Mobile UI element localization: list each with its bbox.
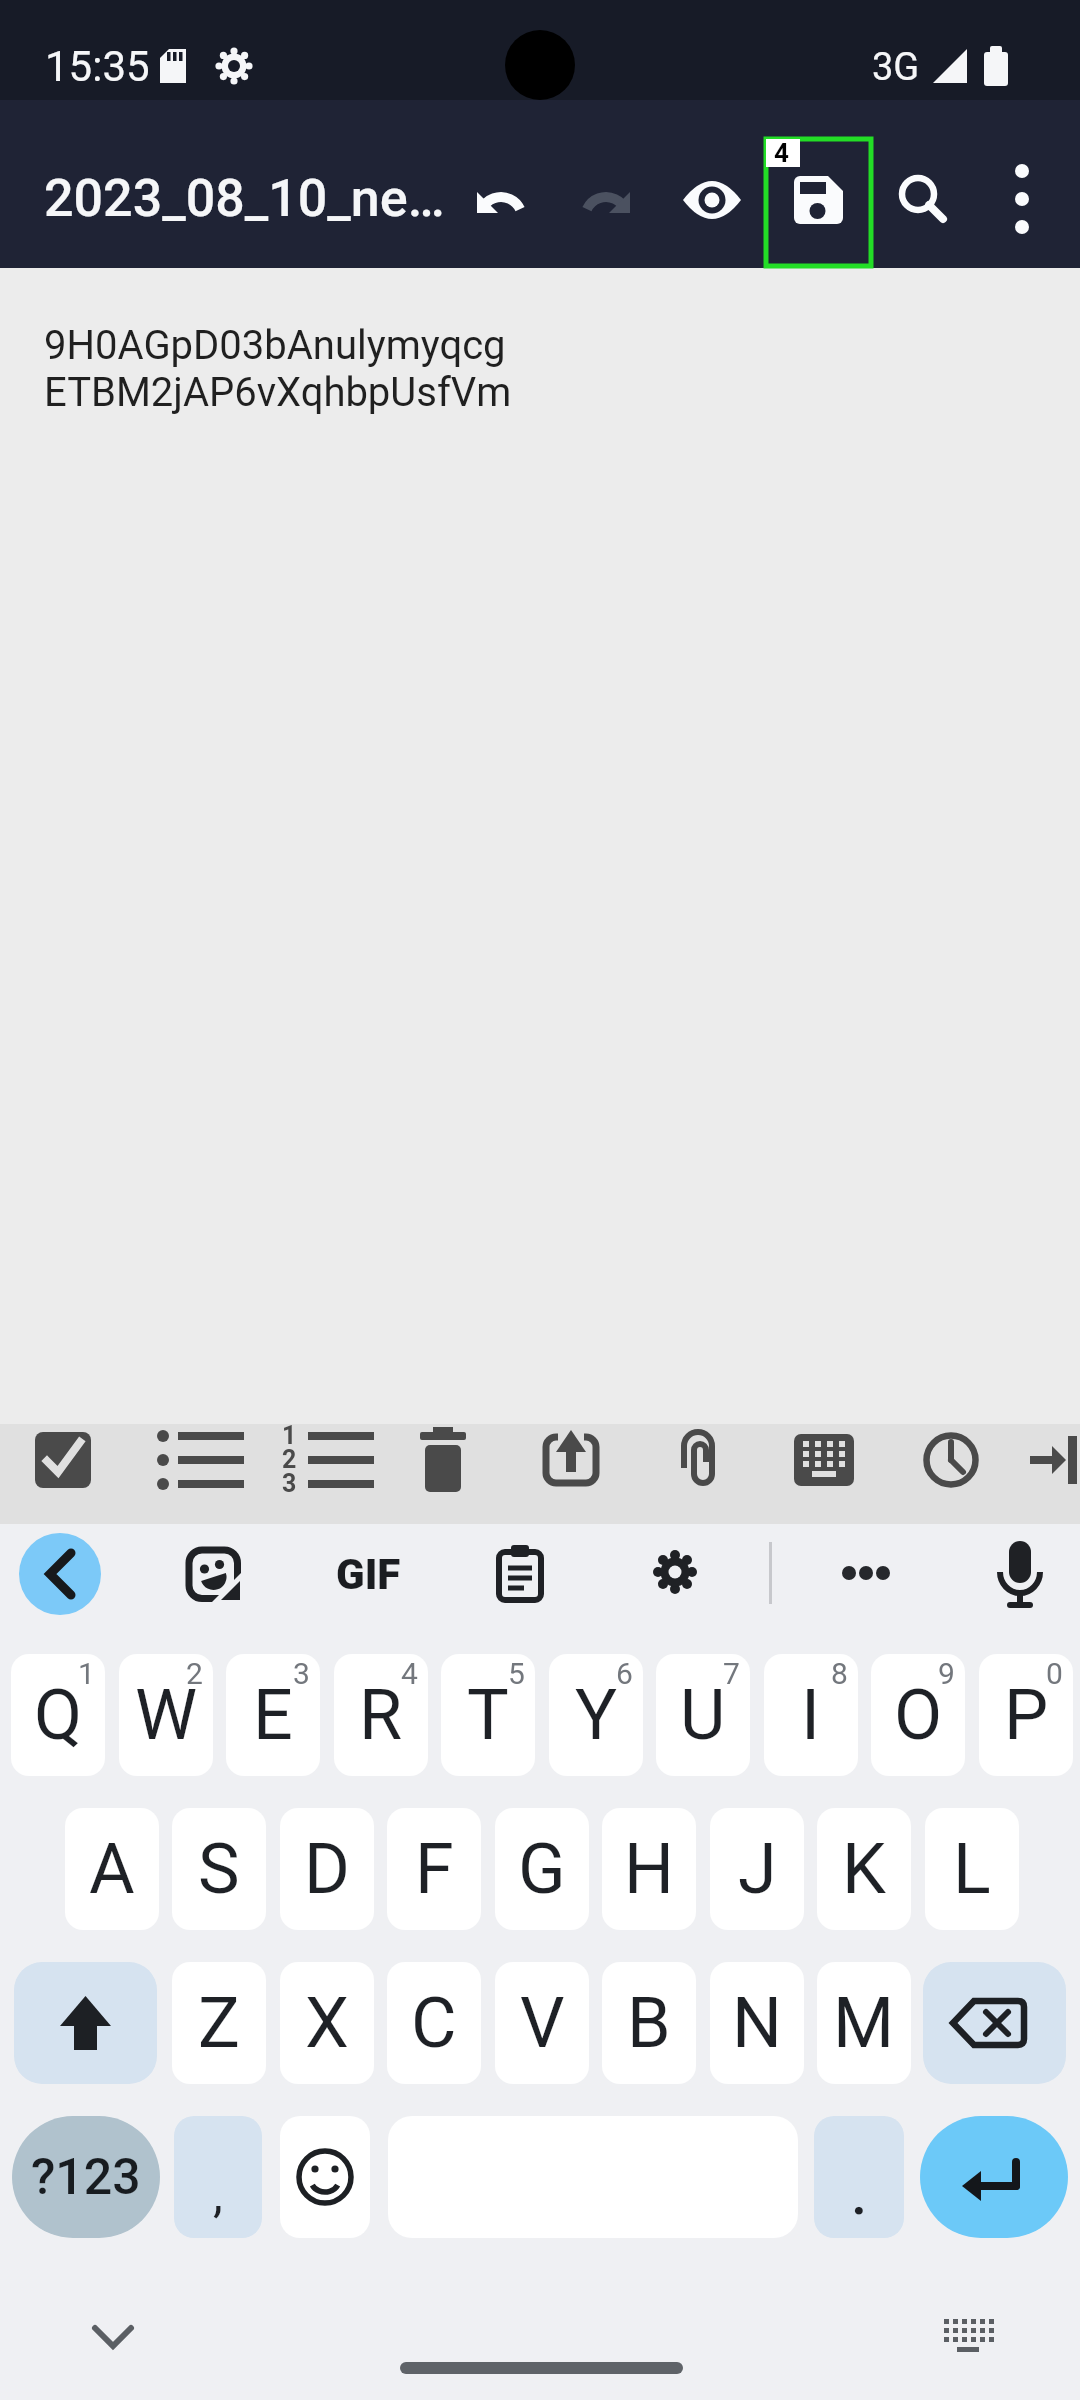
button[interactable] xyxy=(667,140,757,260)
staticText: 8 xyxy=(831,1656,848,1691)
button[interactable] xyxy=(830,1538,902,1610)
button[interactable] xyxy=(877,140,967,260)
button[interactable]: F xyxy=(387,1808,481,1930)
staticText: 3 xyxy=(282,1469,297,1498)
staticText: 2 xyxy=(282,1445,297,1474)
button[interactable] xyxy=(995,1424,1080,1524)
staticText: Z xyxy=(198,1982,240,2064)
button[interactable]: X xyxy=(280,1962,374,2084)
staticText: 15:35 xyxy=(45,42,150,91)
button[interactable]: I xyxy=(764,1654,858,1776)
button[interactable] xyxy=(931,2301,1003,2373)
button[interactable]: M xyxy=(817,1962,911,2084)
button[interactable] xyxy=(14,1962,157,2084)
button[interactable]: N xyxy=(710,1962,804,2084)
button[interactable]: H xyxy=(602,1808,696,1930)
button[interactable]: . xyxy=(814,2116,904,2238)
button[interactable]: ?123 xyxy=(12,2116,160,2238)
staticText: H xyxy=(624,1828,674,1910)
button[interactable] xyxy=(901,1424,1001,1524)
staticText: 4 xyxy=(774,138,789,168)
button[interactable]: GIF xyxy=(320,1540,416,1608)
button[interactable]: S xyxy=(172,1808,266,1930)
button[interactable]: Z xyxy=(172,1962,266,2084)
staticText: B xyxy=(627,1982,671,2064)
button[interactable]: Q xyxy=(11,1654,105,1776)
button[interactable]: D xyxy=(280,1808,374,1930)
button[interactable] xyxy=(393,1424,493,1524)
staticText: D xyxy=(304,1828,350,1910)
button[interactable]: O xyxy=(871,1654,965,1776)
button[interactable] xyxy=(773,140,863,260)
staticText: 1 xyxy=(78,1656,95,1691)
staticText: 9 xyxy=(938,1656,955,1691)
staticText: U xyxy=(680,1674,726,1756)
button[interactable] xyxy=(562,140,652,260)
button[interactable] xyxy=(140,1424,240,1524)
button[interactable] xyxy=(639,1538,711,1610)
button[interactable] xyxy=(280,2116,370,2238)
button[interactable] xyxy=(266,1424,366,1524)
staticText: . xyxy=(851,2160,868,2228)
staticText: A xyxy=(89,1828,135,1910)
button[interactable] xyxy=(520,1424,620,1524)
button[interactable]: P xyxy=(979,1654,1073,1776)
staticText: Y xyxy=(575,1674,618,1756)
button[interactable]: E xyxy=(226,1654,320,1776)
button[interactable] xyxy=(984,1538,1056,1610)
staticText: 4 xyxy=(401,1656,418,1691)
staticText: K xyxy=(842,1828,886,1910)
staticText: ?123 xyxy=(31,2148,141,2207)
staticText: 2 xyxy=(186,1656,203,1691)
button[interactable]: B xyxy=(602,1962,696,2084)
staticText: N xyxy=(732,1982,782,2064)
button[interactable]: K xyxy=(817,1808,911,1930)
button[interactable] xyxy=(455,140,545,260)
button[interactable] xyxy=(177,1538,249,1610)
button[interactable] xyxy=(13,1424,113,1524)
staticText: W xyxy=(135,1674,198,1756)
staticText: 5 xyxy=(508,1656,525,1691)
button[interactable]: R xyxy=(334,1654,428,1776)
staticText: L xyxy=(953,1828,991,1910)
staticText: E xyxy=(253,1674,293,1756)
button[interactable]: A xyxy=(65,1808,159,1930)
staticText: Q xyxy=(34,1674,83,1756)
button[interactable] xyxy=(977,140,1067,260)
staticText: X xyxy=(305,1982,349,2064)
staticText: GIF xyxy=(336,1550,401,1599)
staticText: 1 xyxy=(282,1421,297,1450)
button[interactable] xyxy=(923,1962,1066,2084)
staticText: C xyxy=(411,1982,457,2064)
button[interactable]: U xyxy=(656,1654,750,1776)
button[interactable]: Y xyxy=(549,1654,643,1776)
button[interactable] xyxy=(19,1533,101,1615)
staticText: 2023_08_10_ne… xyxy=(44,168,445,229)
staticText: , xyxy=(213,2165,223,2224)
button[interactable] xyxy=(77,2301,149,2373)
staticText: 3G xyxy=(872,45,920,90)
button[interactable]: J xyxy=(710,1808,804,1930)
staticText: 9H0AGpD03bAnulymyqcg ETBM2jAP6vXqhbpUsfV… xyxy=(44,322,512,416)
button[interactable]: C xyxy=(387,1962,481,2084)
button[interactable] xyxy=(920,2116,1068,2238)
staticText: 3 xyxy=(293,1656,310,1691)
staticText: 0 xyxy=(1046,1656,1063,1691)
button[interactable]: V xyxy=(495,1962,589,2084)
button[interactable]: T xyxy=(441,1654,535,1776)
staticText: P xyxy=(1004,1674,1049,1756)
staticText: 7 xyxy=(723,1656,740,1691)
staticText: I xyxy=(801,1674,821,1756)
staticText: O xyxy=(894,1674,943,1756)
staticText: F xyxy=(415,1828,454,1910)
button[interactable]: W xyxy=(119,1654,213,1776)
button[interactable] xyxy=(774,1424,874,1524)
staticText: J xyxy=(738,1828,777,1910)
button[interactable]: , xyxy=(174,2116,262,2238)
button[interactable]: L xyxy=(925,1808,1019,1930)
button[interactable] xyxy=(489,1538,561,1610)
staticText: V xyxy=(520,1982,565,2064)
button[interactable]: G xyxy=(495,1808,589,1930)
button[interactable] xyxy=(647,1424,747,1524)
